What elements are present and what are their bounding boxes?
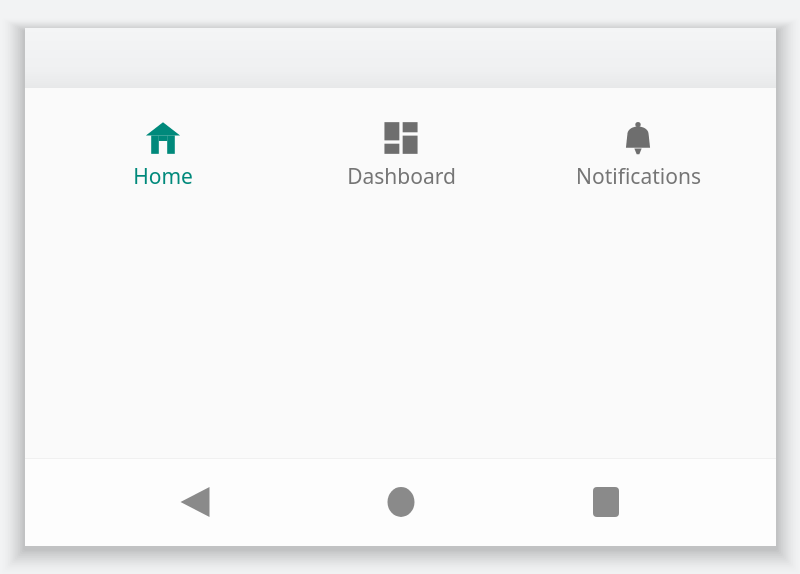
staticText: Dashboard xyxy=(347,162,456,191)
button[interactable]: Home xyxy=(365,466,437,538)
button[interactable]: Back xyxy=(159,466,231,538)
button[interactable]: Home xyxy=(63,116,263,191)
staticText: Home xyxy=(133,162,193,191)
staticText: Notifications xyxy=(576,162,701,191)
button[interactable]: Recent apps xyxy=(570,466,642,538)
button[interactable]: Dashboard xyxy=(301,116,501,191)
button[interactable]: Notifications xyxy=(538,116,738,191)
